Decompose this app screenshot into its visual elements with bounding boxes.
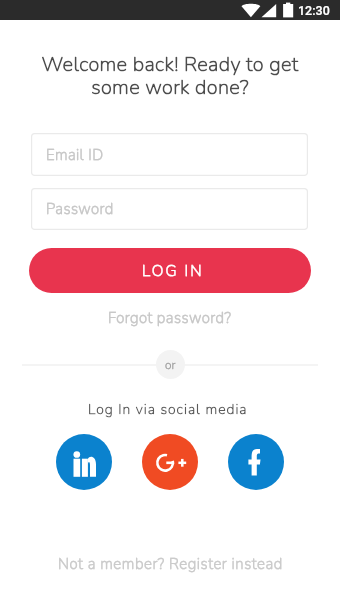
staticText: Welcome back! Ready to get some work don… bbox=[0, 51, 340, 101]
button[interactable]: Password bbox=[31, 188, 308, 230]
staticText: Email ID bbox=[46, 145, 104, 165]
button[interactable]: Log in with Google Plus bbox=[142, 434, 198, 490]
button[interactable]: LOG IN bbox=[29, 248, 311, 293]
button[interactable]: Log in with LinkedIn bbox=[56, 434, 112, 490]
button[interactable]: Email ID bbox=[31, 133, 308, 176]
staticText: Password bbox=[46, 199, 114, 219]
staticText: or bbox=[165, 357, 176, 373]
staticText: Log In via social media bbox=[88, 400, 248, 419]
button[interactable]: Forgot password? bbox=[100, 306, 240, 330]
button[interactable]: Not a member? Register instead bbox=[50, 552, 291, 576]
staticText: LOG IN bbox=[142, 260, 204, 281]
staticText: 12:30 bbox=[298, 3, 330, 18]
button[interactable]: Log in with Facebook bbox=[228, 434, 284, 490]
